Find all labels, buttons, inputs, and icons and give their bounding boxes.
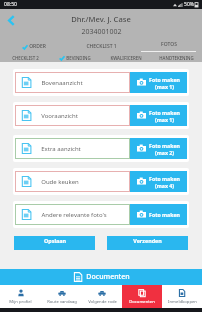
- button[interactable]: Documenten: [0, 269, 202, 285]
- button[interactable]: Foto maken: [130, 138, 187, 159]
- staticText: KWALIFICEREN: [110, 55, 142, 61]
- staticText: Bovenaanzicht: [41, 79, 83, 87]
- staticText: 08:50: [4, 1, 17, 8]
- staticText: Foto maken: [149, 76, 180, 83]
- button[interactable]: Vooraanzicht: [15, 105, 187, 126]
- staticText: Documenten: [86, 272, 130, 282]
- staticText: 2034001002: [81, 27, 122, 37]
- staticText: (max 4): [155, 182, 174, 189]
- button[interactable]: Mijn profiel: [0, 285, 41, 308]
- button[interactable]: Back: [2, 11, 20, 29]
- button[interactable]: HANDTEKENING: [151, 54, 202, 62]
- button[interactable]: FOTOS: [135, 41, 202, 52]
- staticText: Dhr./Mev. J. Case: [71, 14, 131, 24]
- button[interactable]: Volgende rode: [82, 285, 122, 308]
- staticText: Foto maken: [149, 175, 180, 182]
- staticText: HANDTEKENING: [159, 55, 194, 61]
- staticText: CHECKLIST 1: [86, 43, 117, 50]
- button[interactable]: Route vandaag: [41, 285, 82, 308]
- staticText: Andere relevante foto's: [41, 211, 107, 219]
- staticText: Foto maken: [149, 142, 180, 149]
- staticText: Documenten: [129, 299, 155, 305]
- staticText: Verzenden: [133, 237, 162, 244]
- staticText: Opslaan: [44, 237, 66, 244]
- button[interactable]: Oude keuken: [15, 171, 187, 192]
- button[interactable]: Verzenden: [107, 236, 188, 250]
- button[interactable]: KWALIFICEREN: [100, 54, 151, 62]
- button[interactable]: Foto maken: [130, 204, 187, 225]
- button[interactable]: Inmeldkoppen: [162, 285, 202, 308]
- staticText: CHECKLIST 2: [12, 55, 39, 61]
- staticText: Mijn profiel: [9, 299, 32, 305]
- staticText: (max 1): [155, 83, 174, 90]
- button[interactable]: Opslaan: [14, 236, 95, 250]
- staticText: Extra aanzicht: [41, 145, 81, 153]
- staticText: Foto maken: [149, 211, 180, 218]
- staticText: Oude keuken: [41, 178, 79, 186]
- button[interactable]: CHECKLIST 2: [0, 54, 50, 62]
- staticText: 50%: [184, 1, 194, 8]
- staticText: Inmeldkoppen: [168, 299, 197, 305]
- button[interactable]: Extra aanzicht: [15, 138, 187, 159]
- button[interactable]: Foto maken: [130, 72, 187, 93]
- button[interactable]: ORDER: [0, 41, 68, 52]
- staticText: Vooraanzicht: [41, 112, 78, 120]
- staticText: (max 2): [155, 149, 174, 156]
- staticText: BEVINDING: [66, 55, 91, 61]
- button[interactable]: Andere relevante foto's: [15, 204, 187, 225]
- staticText: Volgende rode: [88, 299, 117, 305]
- staticText: Route vandaag: [47, 299, 77, 305]
- button[interactable]: Foto maken: [130, 105, 187, 126]
- staticText: ORDER: [29, 43, 46, 50]
- button[interactable]: Documenten: [122, 285, 162, 308]
- staticText: FOTOS: [161, 41, 177, 48]
- staticText: (max 1): [155, 116, 174, 123]
- button[interactable]: Foto maken: [130, 171, 187, 192]
- button[interactable]: BEVINDING: [50, 54, 100, 62]
- button[interactable]: Bovenaanzicht: [15, 72, 187, 93]
- button[interactable]: CHECKLIST 1: [68, 41, 135, 52]
- staticText: Foto maken: [149, 109, 180, 116]
